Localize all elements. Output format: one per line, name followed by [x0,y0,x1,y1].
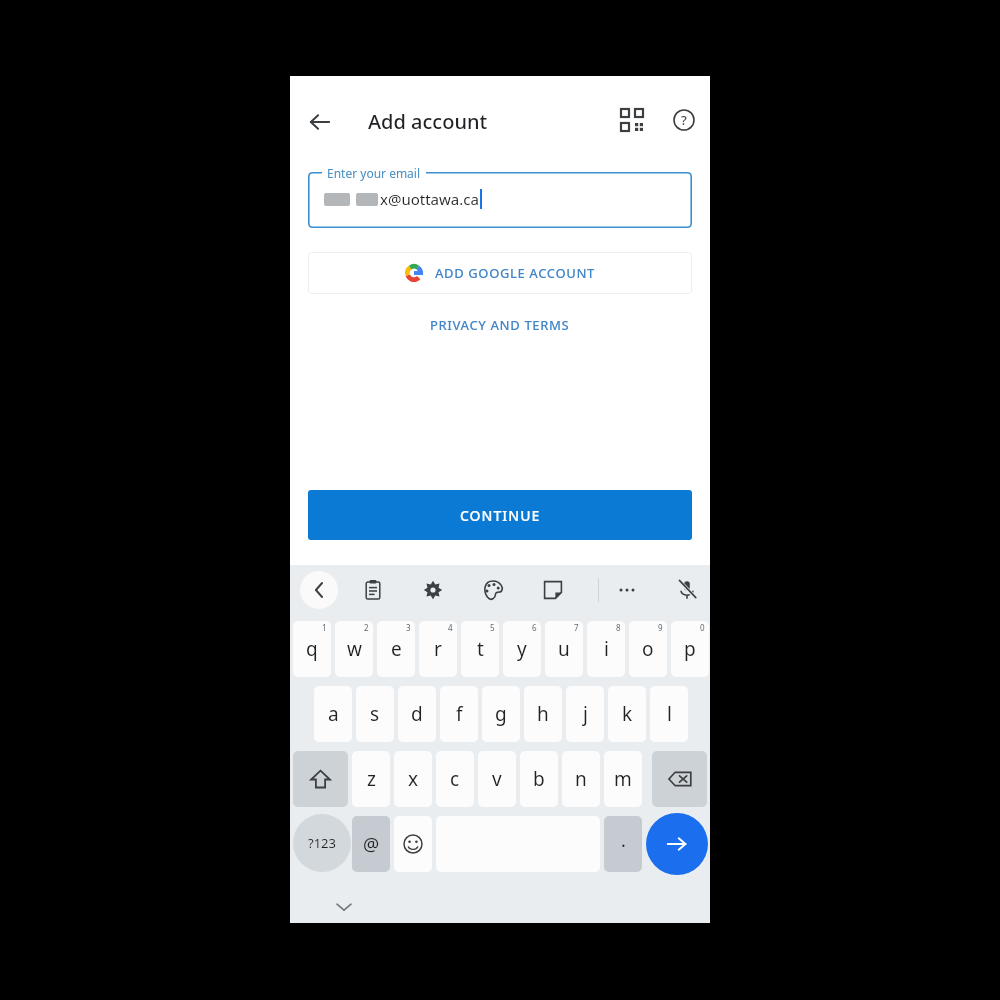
button[interactable]: . [604,816,642,872]
staticText: ?123 [308,834,336,852]
staticText: 0 [700,622,705,633]
staticText: 7 [574,622,579,633]
staticText: 6 [532,622,537,633]
staticText: i [604,636,609,662]
staticText: m [614,766,632,792]
staticText: s [370,701,380,727]
staticText: c [450,766,460,792]
button[interactable]: k [608,686,646,742]
staticText: p [684,636,696,662]
button[interactable]: i [587,621,625,677]
button[interactable]: l [650,686,688,742]
button[interactable]: n [562,751,600,807]
staticText: Add account [368,108,488,135]
button[interactable]: Voice input muted [668,571,706,609]
staticText: q [306,636,318,662]
staticText: t [477,636,484,662]
button[interactable]: r [419,621,457,677]
button[interactable]: y [503,621,541,677]
staticText: z [367,766,376,792]
staticText: j [583,701,588,727]
staticText: w [347,636,362,662]
staticText: 1 [322,622,327,633]
button[interactable]: w [335,621,373,677]
button[interactable]: More options [608,571,646,609]
staticText: @ [363,832,380,857]
button[interactable]: m [604,751,642,807]
staticText: 8 [616,622,621,633]
staticText: . [621,828,626,853]
staticText: 9 [658,622,663,633]
staticText: ? [681,111,687,129]
button[interactable]: e [377,621,415,677]
button[interactable]: v [478,751,516,807]
button[interactable]: Scan QR code [610,98,654,142]
staticText: x@uottawa.ca [380,189,479,209]
button[interactable]: f [440,686,478,742]
staticText: 3 [406,622,411,633]
staticText: k [622,701,633,727]
button[interactable]: a [314,686,352,742]
staticText: u [558,636,570,662]
staticText: e [391,636,402,662]
staticText: o [642,636,654,662]
button[interactable]: Themes [474,571,512,609]
button[interactable]: Back [296,98,344,146]
button[interactable]: Stickers [534,571,572,609]
button[interactable]: Close toolbar [300,571,338,609]
button[interactable]: c [436,751,474,807]
button[interactable]: Hide keyboard [332,895,356,919]
staticText: Enter your email [327,165,421,181]
staticText: 2 [364,622,369,633]
staticText: g [495,701,507,727]
staticText: 4 [448,622,453,633]
button[interactable]: q [293,621,331,677]
staticText: a [328,701,339,727]
button[interactable]: Emoji [394,816,432,872]
button[interactable]: t [461,621,499,677]
button[interactable]: o [629,621,667,677]
button[interactable]: @ [352,816,390,872]
button[interactable]: Clipboard [354,571,392,609]
button[interactable]: g [482,686,520,742]
button[interactable]: ADD GOOGLE ACCOUNT [308,252,692,294]
staticText: v [492,766,502,792]
button[interactable]: x [394,751,432,807]
staticText: l [667,701,672,727]
staticText: CONTINUE [460,506,541,525]
staticText: x [408,766,419,792]
button[interactable]: Enter [646,813,708,875]
button[interactable]: j [566,686,604,742]
staticText: b [533,766,545,792]
staticText: n [575,766,587,792]
button[interactable]: z [352,751,390,807]
button[interactable]: Backspace [652,751,707,807]
button[interactable]: h [524,686,562,742]
button[interactable]: Enter your email [308,172,692,228]
button[interactable]: Settings [414,571,452,609]
button[interactable]: u [545,621,583,677]
staticText: h [537,701,549,727]
staticText: 5 [490,622,495,633]
button[interactable]: d [398,686,436,742]
staticText: y [517,636,527,662]
staticText: ADD GOOGLE ACCOUNT [435,264,595,282]
button[interactable]: CONTINUE [308,490,692,540]
staticText: d [411,701,423,727]
staticText: f [456,701,463,727]
button[interactable]: Shift [293,751,348,807]
button[interactable]: s [356,686,394,742]
button[interactable]: Help [662,98,706,142]
staticText: PRIVACY AND TERMS [430,316,570,334]
button[interactable]: PRIVACY AND TERMS [410,308,590,342]
button[interactable]: p [671,621,709,677]
button[interactable]: b [520,751,558,807]
button[interactable]: ?123 [293,814,351,872]
staticText: r [434,636,442,662]
